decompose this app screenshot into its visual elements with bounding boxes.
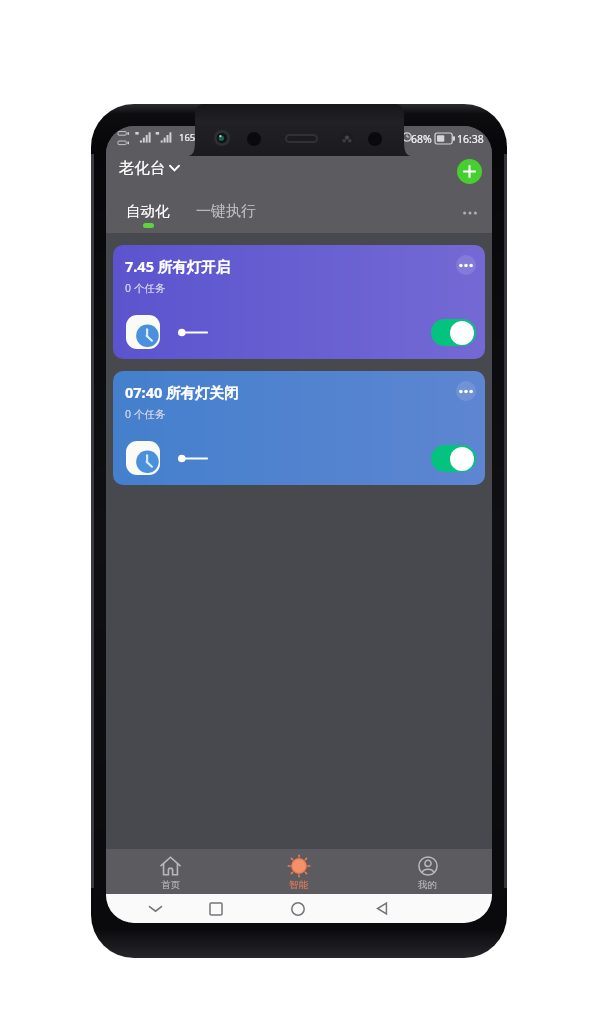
staticText: 老化台 — [119, 158, 166, 178]
button[interactable]: 07:40 所有灯关闭 — [113, 371, 485, 485]
staticText: 0 个任务 — [125, 407, 166, 421]
staticText: 0 个任务 — [125, 281, 166, 295]
button[interactable]: Card options — [456, 381, 476, 401]
staticText: 自动化 — [126, 202, 170, 220]
staticText: 165 — [179, 131, 196, 144]
button[interactable]: 首页 — [106, 849, 234, 895]
button[interactable]: Add automation — [457, 159, 482, 184]
staticText: 我的 — [418, 879, 437, 891]
button[interactable]: Back — [371, 894, 393, 923]
button[interactable]: 智能 — [234, 849, 363, 895]
button[interactable]: Hide keyboard — [144, 894, 166, 923]
button[interactable]: Enable automation — [431, 445, 476, 472]
staticText: 首页 — [161, 879, 180, 891]
staticText: 16:38 — [457, 132, 484, 146]
staticText: 智能 — [289, 879, 308, 891]
button[interactable]: 自动化 — [119, 202, 177, 228]
staticText: 68% — [411, 132, 432, 146]
staticText: 7.45 所有灯开启 — [125, 256, 231, 276]
button[interactable]: Card options — [456, 255, 476, 275]
button[interactable]: 老化台 — [115, 155, 183, 181]
button[interactable]: 我的 — [363, 849, 492, 895]
button[interactable]: 7.45 所有灯开启 — [113, 245, 485, 359]
button[interactable]: Home — [287, 894, 309, 923]
button[interactable]: Recent apps — [205, 894, 227, 923]
staticText: 07:40 所有灯关闭 — [125, 382, 239, 402]
button[interactable]: 一键执行 — [190, 200, 262, 223]
button[interactable]: More options — [457, 200, 483, 226]
button[interactable]: Enable automation — [431, 319, 476, 346]
